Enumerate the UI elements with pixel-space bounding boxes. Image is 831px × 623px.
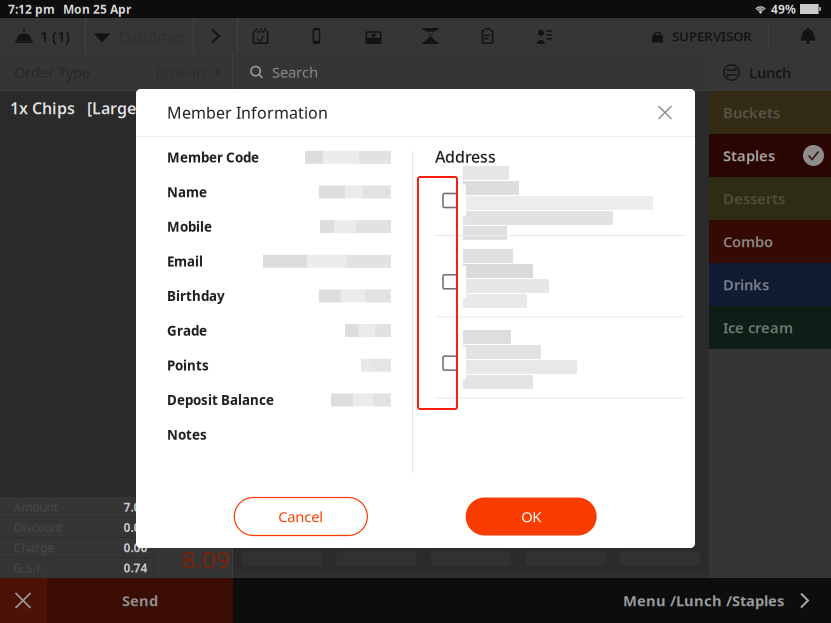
button[interactable]: Mobile bbox=[288, 18, 345, 54]
staticText: Ice cream bbox=[723, 318, 793, 337]
staticText: Discount bbox=[13, 519, 62, 535]
staticText: Email bbox=[167, 252, 203, 270]
staticText: 49% bbox=[771, 1, 796, 17]
staticText: Desserts bbox=[723, 189, 785, 208]
staticText: Send bbox=[122, 591, 158, 610]
staticText: Search bbox=[272, 62, 318, 82]
button[interactable]: Select address 1 bbox=[434, 184, 466, 216]
staticText: Staples bbox=[723, 146, 775, 165]
staticText: 0.00 bbox=[123, 519, 147, 535]
staticText: Drinks bbox=[723, 275, 769, 294]
staticText: Points bbox=[167, 356, 209, 374]
staticText: Charge bbox=[13, 540, 54, 556]
staticText: Amount bbox=[13, 499, 57, 515]
button[interactable]: Send bbox=[47, 578, 233, 623]
button[interactable]: Select address 3 bbox=[434, 347, 466, 379]
button[interactable]: SUPERVISOR bbox=[652, 18, 752, 54]
staticText: Mon 25 Apr bbox=[63, 1, 131, 17]
button[interactable]: Inbox bbox=[345, 18, 402, 54]
staticText: 1 (1) bbox=[40, 26, 70, 46]
button[interactable]: Lunch bbox=[709, 54, 831, 91]
button[interactable]: Order Type bbox=[0, 54, 232, 90]
staticText: G.S.T. bbox=[13, 560, 43, 576]
staticText: 0.00 bbox=[123, 540, 147, 556]
button[interactable]: 1 (1) bbox=[0, 18, 85, 54]
button[interactable]: Reports bbox=[459, 18, 516, 54]
staticText: Grade bbox=[167, 322, 207, 339]
staticText: Name bbox=[167, 183, 207, 201]
staticText: Lunch bbox=[749, 63, 791, 82]
staticText: Address bbox=[435, 146, 496, 167]
button[interactable]: Staples bbox=[709, 134, 831, 177]
staticText: Birthday bbox=[167, 287, 225, 305]
staticText: Menu /Lunch /Staples bbox=[623, 591, 784, 610]
button[interactable]: Next bbox=[194, 18, 237, 54]
button[interactable]: Cancel bbox=[234, 497, 367, 535]
staticText: SUPERVISOR bbox=[672, 27, 752, 45]
button[interactable]: Combo bbox=[709, 220, 831, 263]
staticText: 8.09 bbox=[181, 543, 229, 575]
staticText: Notes bbox=[167, 426, 207, 443]
button[interactable]: Drinks bbox=[709, 263, 831, 306]
button[interactable]: Select address 2 bbox=[434, 266, 466, 298]
button[interactable]: OK bbox=[466, 497, 597, 535]
button[interactable]: Staff bbox=[516, 18, 573, 54]
button[interactable]: Ice cream bbox=[709, 306, 831, 349]
staticText: [Large ] bbox=[87, 97, 145, 119]
button[interactable]: Close bbox=[644, 90, 686, 134]
button[interactable]: Desserts bbox=[709, 177, 831, 220]
staticText: Order Type bbox=[14, 62, 90, 82]
staticText: Mobile bbox=[167, 218, 212, 235]
button[interactable]: Customer bbox=[86, 18, 193, 54]
staticText: Buckets bbox=[723, 103, 780, 122]
button[interactable]: Buckets bbox=[709, 91, 831, 134]
staticText: Combo bbox=[723, 232, 773, 251]
staticText: Deposit Balance bbox=[167, 391, 274, 409]
button[interactable]: Notifications bbox=[785, 18, 831, 54]
staticText: Cancel bbox=[278, 507, 323, 526]
staticText: Member Information bbox=[167, 102, 328, 123]
button[interactable]: Reservations bbox=[238, 18, 283, 54]
staticText: Member Code bbox=[167, 148, 259, 166]
staticText: 1x Chips bbox=[10, 97, 75, 119]
button[interactable]: Void order bbox=[0, 578, 46, 623]
staticText: 7:12 pm bbox=[8, 1, 55, 17]
button[interactable]: Menu /Lunch /Staples bbox=[623, 578, 831, 623]
staticText: 0.74 bbox=[123, 560, 147, 576]
button[interactable]: Pending bbox=[402, 18, 459, 54]
staticText: 7.00 bbox=[123, 499, 147, 515]
staticText: OK bbox=[521, 507, 541, 526]
